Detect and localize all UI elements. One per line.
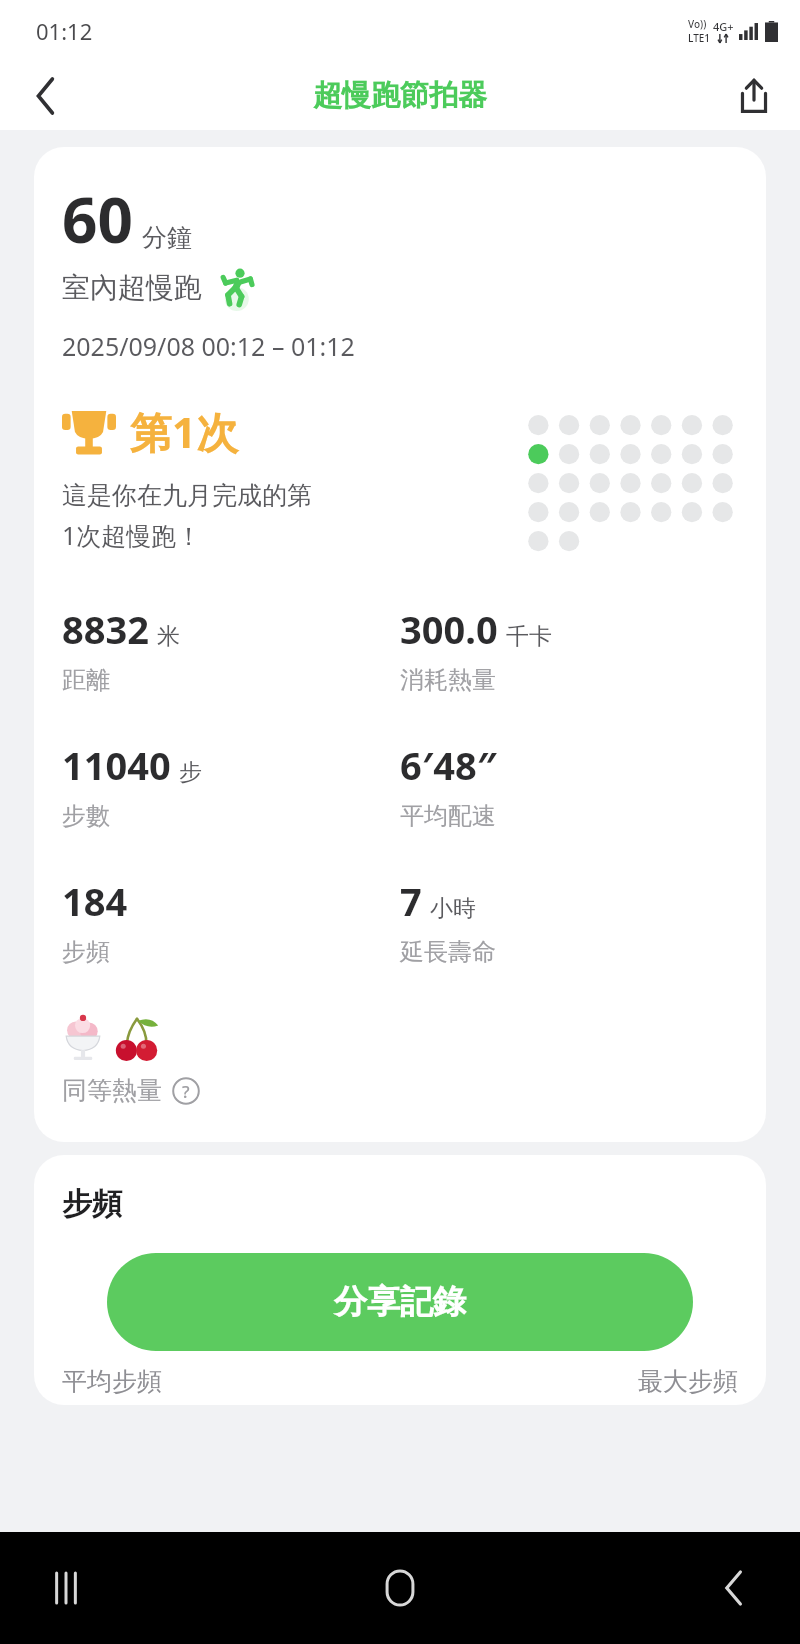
staticText: 步頻	[62, 937, 110, 967]
staticText: 7	[400, 875, 422, 927]
staticText: 步數	[62, 801, 110, 831]
staticText: 300.0	[400, 603, 498, 655]
staticText: 步	[179, 758, 202, 787]
staticText: 184	[62, 875, 128, 927]
staticText: 分享記錄	[334, 1281, 466, 1323]
button[interactable]: Info	[171, 1076, 201, 1106]
staticText: 8832	[62, 603, 149, 655]
staticText: 步頻	[62, 1185, 122, 1223]
button[interactable]: Share	[726, 68, 782, 124]
staticText: 千卡	[506, 622, 552, 651]
staticText: 01:12	[36, 16, 93, 46]
staticText: 4G+	[713, 19, 734, 34]
staticText: 平均步頻	[62, 1366, 162, 1397]
staticText: 分鐘	[142, 222, 192, 253]
staticText: 這是你在九月完成的第 1次超慢跑！	[62, 480, 312, 553]
staticText: 消耗熱量	[400, 665, 496, 695]
staticText: 室內超慢跑	[62, 270, 202, 305]
staticText: 米	[157, 622, 180, 651]
button[interactable]: Recents	[18, 1540, 114, 1636]
staticText: 第1次	[130, 403, 239, 460]
staticText: 同等熱量	[62, 1075, 162, 1106]
staticText: 平均配速	[400, 801, 496, 831]
button[interactable]: Back	[686, 1540, 782, 1636]
staticText: 延長壽命	[400, 937, 496, 967]
staticText: 最大步頻	[638, 1366, 738, 1397]
staticText: 60	[62, 177, 133, 261]
staticText: 超慢跑節拍器	[313, 77, 487, 114]
staticText: LTE1	[688, 31, 711, 45]
staticText: 小時	[430, 894, 476, 923]
staticText: 11040	[62, 739, 171, 791]
staticText: Vo))	[688, 17, 707, 31]
staticText: 6′48″	[400, 739, 497, 791]
button[interactable]: Home	[352, 1540, 448, 1636]
button[interactable]: Back	[18, 68, 74, 124]
button[interactable]: 分享記錄	[107, 1253, 693, 1351]
staticText: 距離	[62, 665, 110, 695]
staticText: ?	[182, 1080, 190, 1103]
staticText: 2025/09/08 00:12 – 01:12	[62, 329, 355, 363]
